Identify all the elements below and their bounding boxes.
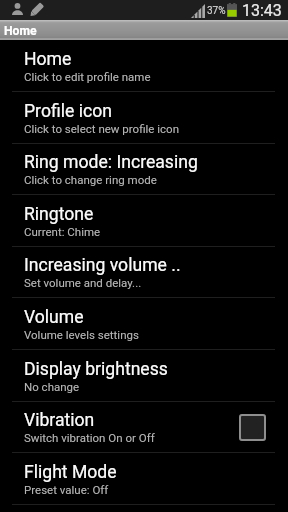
staticText: Display brightness: [24, 359, 168, 380]
staticText: Ringtone: [24, 204, 94, 225]
staticText: Vibration: [24, 410, 95, 431]
button[interactable]: Ring mode: Increasing: [0, 143, 288, 195]
staticText: Volume levels settings: [24, 328, 139, 341]
button[interactable]: Increasing volume ..: [0, 246, 288, 298]
staticText: Click to select new profile icon: [24, 122, 179, 135]
staticText: Preset value: Off: [24, 483, 109, 496]
button[interactable]: Home: [0, 20, 288, 40]
staticText: No change: [24, 380, 80, 393]
staticText: Switch vibration On or Off: [24, 431, 155, 444]
staticText: Set volume and delay...: [24, 276, 142, 289]
staticText: Increasing volume ..: [24, 255, 181, 276]
button[interactable]: Home: [0, 40, 288, 92]
button[interactable]: Vibration: [0, 401, 288, 453]
staticText: 13:43: [242, 1, 282, 20]
staticText: Click to edit profile name: [24, 70, 151, 83]
staticText: 37%: [207, 5, 226, 17]
staticText: Home: [24, 49, 72, 70]
staticText: Flight Mode: [24, 462, 117, 483]
staticText: Current: Chime: [24, 225, 101, 238]
staticText: Volume: [24, 307, 84, 328]
button[interactable]: Volume: [0, 298, 288, 350]
staticText: Click to change ring mode: [24, 173, 157, 186]
staticText: Profile icon: [24, 101, 112, 122]
button[interactable]: Ringtone: [0, 195, 288, 247]
button[interactable]: Profile icon: [0, 92, 288, 144]
button[interactable]: Display brightness: [0, 350, 288, 402]
staticText: Ring mode: Increasing: [24, 152, 198, 173]
button[interactable]: Flight Mode: [0, 453, 288, 505]
staticText: Home: [4, 24, 37, 38]
